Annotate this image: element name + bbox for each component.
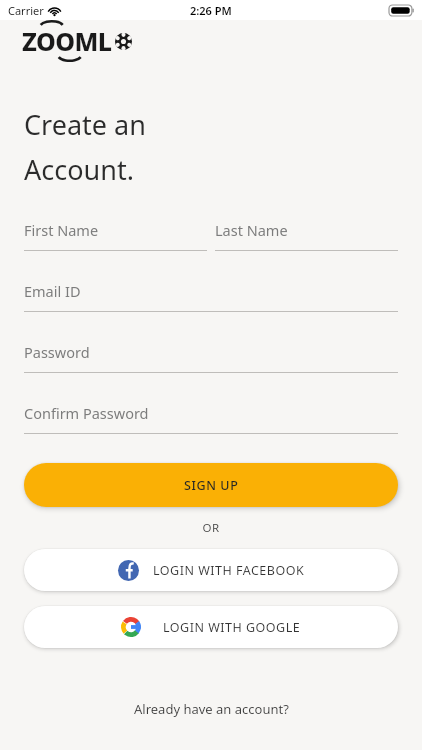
staticText: Password	[24, 342, 90, 362]
other: Zoomlo logo	[22, 24, 132, 58]
staticText: Carrier	[8, 3, 44, 18]
staticText: Confirm Password	[24, 403, 149, 423]
button[interactable]: Confirm Password	[24, 393, 398, 434]
staticText: Last Name	[215, 220, 288, 240]
button[interactable]: SIGN UP	[24, 463, 398, 507]
staticText: LOGIN WITH FACEBOOK	[153, 562, 305, 579]
button[interactable]: Email ID	[24, 271, 398, 312]
staticText: First Name	[24, 220, 99, 240]
staticText: Email ID	[24, 281, 81, 301]
staticText: Already have an account?	[134, 700, 289, 718]
staticText: 2:26 PM	[190, 3, 232, 18]
button[interactable]: Password	[24, 332, 398, 373]
button[interactable]: Last Name	[215, 210, 398, 251]
staticText: LOGIN WITH GOOGLE	[163, 619, 301, 636]
button[interactable]: LOGIN WITH GOOGLE	[24, 606, 398, 648]
staticText: ZOOML	[22, 24, 112, 58]
staticText: SIGN UP	[184, 477, 239, 494]
button[interactable]: LOGIN WITH FACEBOOK	[24, 549, 398, 591]
staticText: Account.	[24, 151, 134, 188]
staticText: Create an	[24, 106, 146, 143]
button[interactable]: First Name	[24, 210, 207, 251]
button[interactable]: Already have an account?	[122, 694, 301, 724]
staticText: OR	[0, 520, 422, 536]
